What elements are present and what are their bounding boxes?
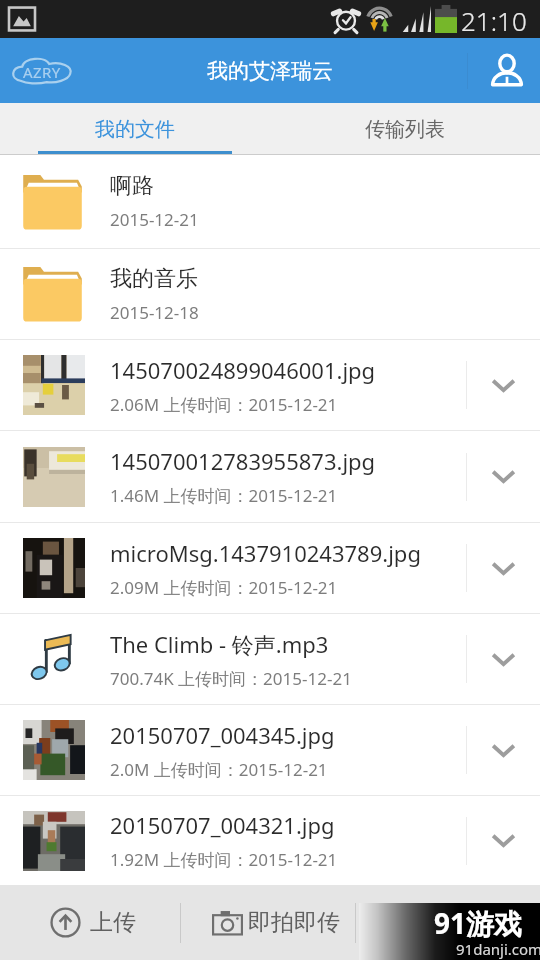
button[interactable]: 即拍即传 — [181, 885, 355, 960]
button[interactable]: 20150707_004345.jpg — [0, 705, 540, 795]
staticText: 20150707_004345.jpg — [110, 720, 335, 750]
button[interactable]: Account — [474, 38, 540, 103]
button[interactable]: The Climb - 铃声.mp3 — [0, 614, 540, 704]
staticText: 145070012783955873.jpg — [110, 446, 376, 476]
button[interactable]: microMsg.1437910243789.jpg — [0, 523, 540, 613]
staticText: 21:10 — [461, 3, 527, 38]
button[interactable]: 我的音乐 — [0, 249, 540, 339]
button[interactable]: Expand — [467, 523, 540, 613]
staticText: 2.0M 上传时间：2015-12-21 — [110, 758, 328, 781]
staticText: 2015-12-18 — [110, 301, 199, 324]
staticText: microMsg.1437910243789.jpg — [110, 538, 421, 568]
staticText: 91游戏 — [434, 904, 523, 942]
button[interactable]: 145070024899046001.jpg — [0, 340, 540, 430]
button[interactable]: Expand — [467, 614, 540, 704]
button[interactable]: 啊路 — [0, 155, 540, 248]
staticText: 2.06M 上传时间：2015-12-21 — [110, 393, 338, 416]
staticText: 我的音乐 — [110, 265, 198, 293]
staticText: 我的艾泽瑞云 — [207, 58, 333, 84]
staticText: 传输列表 — [365, 117, 445, 142]
button[interactable]: Expand — [467, 431, 540, 522]
staticText: 91danji.com — [456, 939, 540, 959]
staticText: 啊路 — [110, 172, 154, 200]
staticText: 即拍即传 — [248, 908, 340, 937]
staticText: AZRY — [23, 62, 61, 82]
staticText: 20150707_004321.jpg — [110, 810, 335, 840]
staticText: The Climb - 铃声.mp3 — [110, 629, 329, 659]
staticText: 上传 — [90, 908, 136, 937]
button[interactable]: 传输列表 — [270, 103, 540, 155]
staticText: 1.46M 上传时间：2015-12-21 — [110, 484, 338, 507]
staticText: 2015-12-21 — [110, 208, 199, 231]
button[interactable]: Expand — [467, 705, 540, 795]
button[interactable]: 上传 — [0, 885, 180, 960]
staticText: 145070024899046001.jpg — [110, 355, 376, 385]
button[interactable]: 20150707_004321.jpg — [0, 796, 540, 885]
button[interactable]: 145070012783955873.jpg — [0, 431, 540, 522]
staticText: 我的文件 — [95, 117, 175, 142]
button[interactable]: 我的文件 — [0, 103, 270, 155]
staticText: 1.92M 上传时间：2015-12-21 — [110, 848, 338, 871]
button[interactable]: Expand — [467, 796, 540, 885]
button[interactable]: Expand — [467, 340, 540, 430]
staticText: 2.09M 上传时间：2015-12-21 — [110, 576, 338, 599]
staticText: 700.74K 上传时间：2015-12-21 — [110, 667, 352, 690]
